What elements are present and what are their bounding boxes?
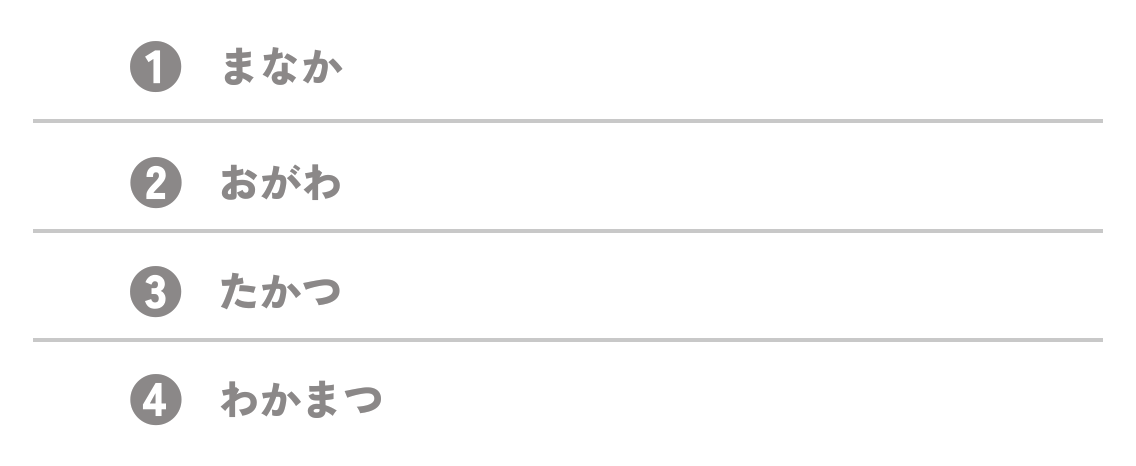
staticText: ❶ [129, 25, 183, 103]
button[interactable]: ❸ [0, 236, 1136, 346]
staticText: たかつ [218, 259, 343, 319]
staticText: まなか [218, 34, 343, 94]
button[interactable]: ❶ [0, 11, 1136, 121]
staticText: ❸ [129, 250, 183, 328]
button[interactable]: ❹ [0, 344, 1136, 454]
staticText: おがわ [218, 150, 343, 210]
staticText: ❹ [129, 358, 183, 436]
button[interactable]: ❷ [0, 127, 1136, 237]
staticText: ❷ [129, 141, 183, 219]
staticText: わかまつ [218, 367, 385, 427]
